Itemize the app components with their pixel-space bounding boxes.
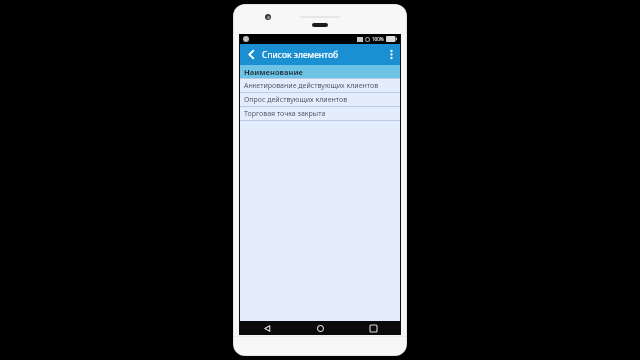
staticText: Торговая точка закрыта [244,109,326,119]
staticText: 100% [372,36,384,42]
button[interactable]: Назад [240,44,262,65]
button[interactable]: Назад [240,321,294,335]
button[interactable]: Ещё [382,44,400,65]
staticText: Опрос действующих клиентов [244,95,348,105]
button[interactable]: Анкетирование действующих клиентов [240,79,400,92]
staticText: Анкетирование действующих клиентов [244,81,379,91]
button[interactable]: Наименование [240,65,400,78]
staticText: Список элементоб [262,49,382,61]
button[interactable]: Торговая точка закрыта [240,107,400,120]
button[interactable]: Главный экран [294,321,347,335]
staticText: Наименование [244,67,303,77]
button[interactable]: Опрос действующих клиентов [240,93,400,106]
button[interactable]: Недавние приложения [347,321,400,335]
